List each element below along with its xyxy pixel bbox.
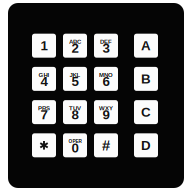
staticText: ABC — [69, 38, 81, 45]
button[interactable]: Pound — [94, 133, 118, 157]
staticText: JKL — [69, 71, 80, 78]
button[interactable]: Star — [32, 133, 56, 157]
button[interactable]: 1 — [32, 34, 56, 58]
staticText: 2 — [71, 41, 78, 56]
button[interactable]: C — [134, 100, 158, 124]
staticText: A — [141, 38, 151, 53]
staticText: 7 — [40, 107, 47, 122]
button[interactable]: 4 GHI — [32, 67, 56, 91]
button[interactable]: B — [134, 67, 158, 91]
staticText: 9 — [102, 107, 109, 122]
staticText: MNO — [99, 71, 113, 78]
staticText: D — [141, 138, 151, 153]
button[interactable]: 0 Operator — [63, 133, 87, 157]
button[interactable]: 6 MNO — [94, 67, 118, 91]
staticText: GHI — [38, 71, 49, 78]
staticText: 5 — [71, 74, 78, 89]
staticText: 4 — [40, 74, 47, 89]
staticText: OPER — [68, 139, 81, 144]
staticText: PRS — [38, 105, 50, 111]
staticText: 8 — [71, 107, 78, 122]
button[interactable]: 2 ABC — [63, 34, 87, 58]
button[interactable]: 3 DEF — [94, 34, 118, 58]
button[interactable]: 9 WXY — [94, 100, 118, 124]
staticText: 6 — [102, 74, 109, 89]
button[interactable]: D — [134, 133, 158, 157]
staticText: DEF — [100, 38, 112, 45]
button[interactable]: 8 TUV — [63, 100, 87, 124]
button[interactable]: 7 PRS — [32, 100, 56, 124]
button[interactable]: A — [134, 34, 158, 58]
button[interactable]: 5 JKL — [63, 67, 87, 91]
staticText: # — [102, 137, 110, 153]
staticText: 3 — [102, 41, 109, 56]
staticText: B — [141, 71, 151, 86]
staticText: TUV — [69, 105, 81, 111]
staticText: WXY — [99, 105, 113, 111]
staticText: 1 — [40, 38, 47, 53]
staticText: 0 — [71, 140, 78, 155]
staticText: C — [141, 105, 151, 120]
